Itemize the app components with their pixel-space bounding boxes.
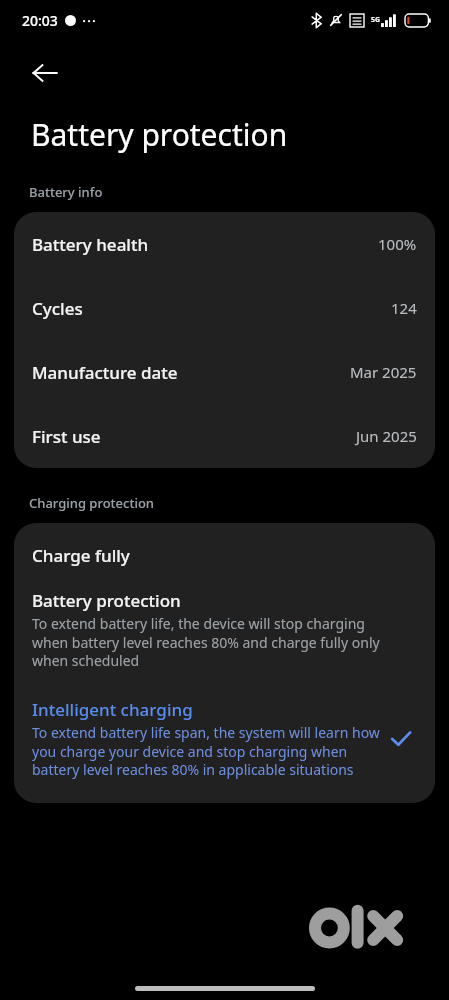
staticText: 100% bbox=[378, 234, 417, 254]
staticText: Battery protection bbox=[31, 114, 288, 155]
staticText: To extend battery life span, the system … bbox=[32, 723, 381, 779]
button[interactable]: Battery protection bbox=[14, 583, 435, 676]
staticText: Battery info bbox=[29, 183, 103, 201]
button[interactable]: Manufacture date bbox=[14, 340, 435, 404]
staticText: Intelligent charging bbox=[32, 698, 193, 721]
button[interactable]: First use bbox=[14, 404, 435, 468]
staticText: Cycles bbox=[32, 297, 83, 320]
staticText: 124 bbox=[391, 298, 417, 318]
button[interactable]: Cycles bbox=[14, 276, 435, 340]
button[interactable]: Charge fully bbox=[14, 523, 435, 583]
button[interactable]: Back bbox=[18, 46, 72, 100]
staticText: Battery health bbox=[32, 233, 149, 256]
button[interactable]: Intelligent charging bbox=[14, 692, 435, 785]
staticText: Jun 2025 bbox=[356, 426, 417, 446]
staticText: Manufacture date bbox=[32, 361, 178, 384]
button[interactable]: Battery health bbox=[14, 212, 435, 276]
staticText: Charging protection bbox=[29, 494, 155, 512]
staticText: 20:03 bbox=[22, 11, 58, 30]
staticText: Battery protection bbox=[32, 589, 181, 612]
staticText: Mar 2025 bbox=[350, 362, 417, 382]
staticText: First use bbox=[32, 425, 101, 448]
staticText: To extend battery life, the device will … bbox=[32, 614, 381, 670]
staticText: 5G bbox=[371, 15, 381, 25]
staticText: Charge fully bbox=[32, 544, 130, 567]
